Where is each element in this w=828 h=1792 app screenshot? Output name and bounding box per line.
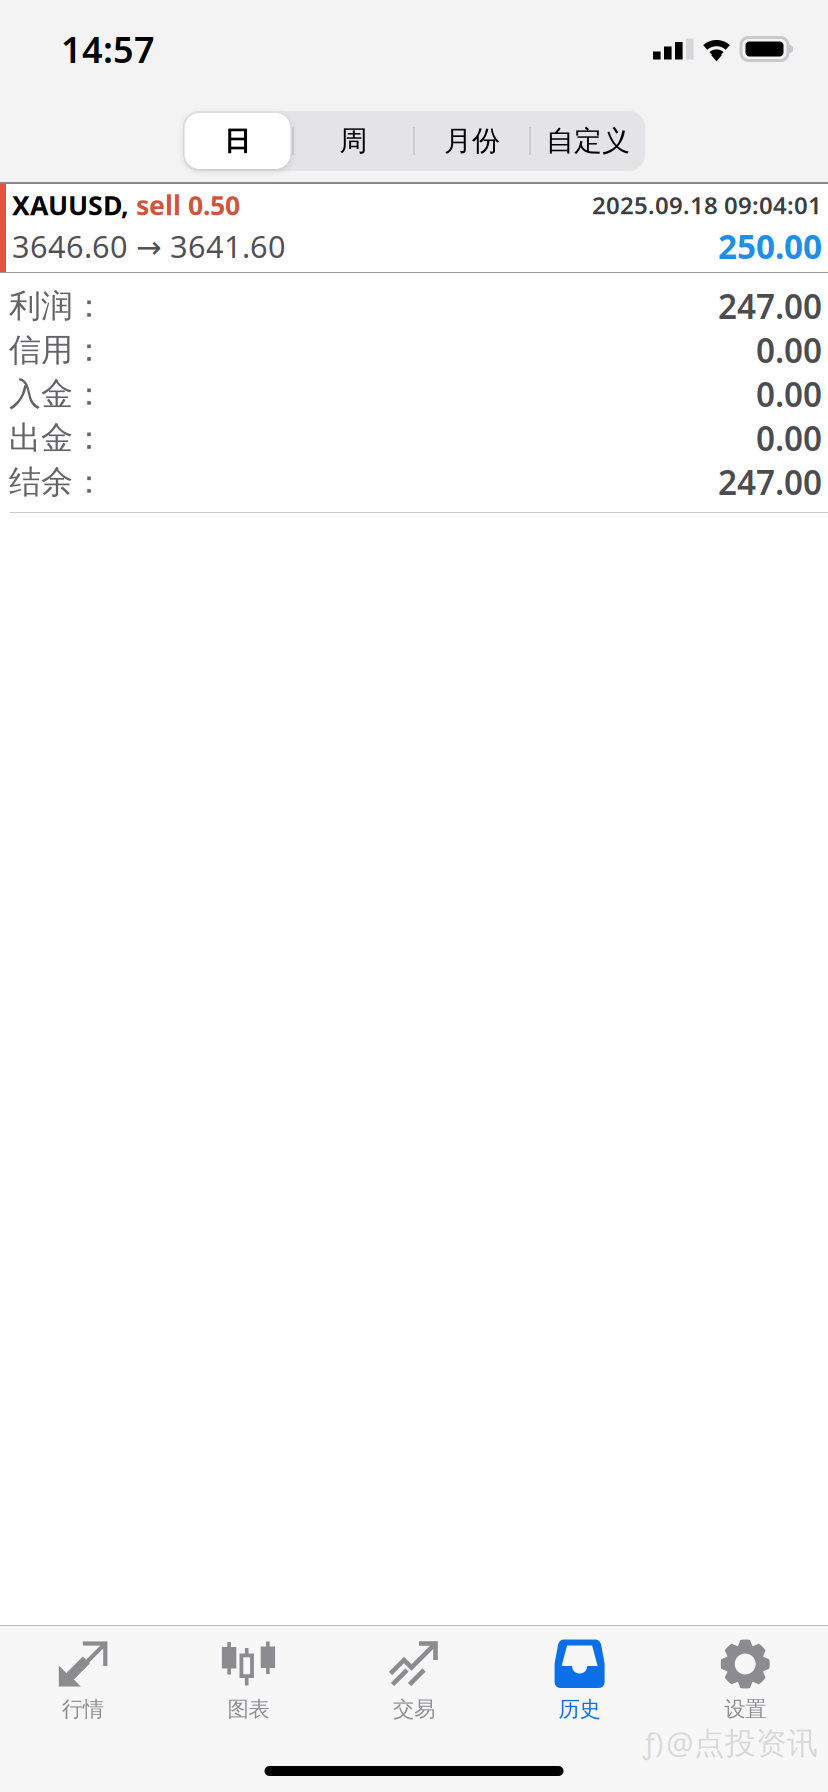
staticText: 250.00 bbox=[718, 224, 822, 268]
staticText: 2025.09.18 09:04:01 bbox=[592, 189, 822, 221]
staticText: 利润： bbox=[9, 286, 105, 326]
button[interactable]: 设置 bbox=[662, 1626, 828, 1730]
staticText: 交易 bbox=[393, 1696, 435, 1722]
staticText: 14:57 bbox=[61, 25, 155, 73]
button[interactable]: 历史 bbox=[497, 1626, 662, 1730]
staticText: 图表 bbox=[227, 1696, 269, 1722]
staticText: 0.00 bbox=[756, 372, 822, 416]
staticText: 信用： bbox=[9, 330, 105, 370]
staticText: 3646.60 → 3641.60 bbox=[12, 226, 286, 266]
button[interactable]: 交易 bbox=[331, 1626, 497, 1730]
staticText: 行情 bbox=[62, 1696, 104, 1722]
staticText: 自定义 bbox=[546, 124, 630, 158]
button[interactable]: 月份 bbox=[414, 111, 529, 171]
staticText: @点投资讯 bbox=[666, 1722, 818, 1763]
staticText: 周 bbox=[339, 124, 367, 158]
staticText: 247.00 bbox=[718, 284, 822, 328]
staticText: 月份 bbox=[444, 124, 500, 158]
staticText: 0.00 bbox=[756, 328, 822, 372]
staticText: 247.00 bbox=[718, 460, 822, 504]
staticText: 出金： bbox=[9, 418, 105, 458]
staticText: 0.00 bbox=[756, 416, 822, 460]
staticText: 结余： bbox=[9, 462, 105, 502]
button[interactable]: 周 bbox=[293, 111, 413, 171]
staticText: 入金： bbox=[9, 374, 105, 414]
staticText: sell 0.50 bbox=[136, 187, 240, 223]
button[interactable]: 日 bbox=[182, 111, 292, 171]
staticText: 日 bbox=[224, 125, 251, 157]
button[interactable]: XAUUSD, bbox=[0, 184, 828, 272]
staticText: 设置 bbox=[724, 1696, 766, 1722]
staticText: XAUUSD, bbox=[12, 187, 136, 223]
staticText: 历史 bbox=[559, 1696, 601, 1722]
staticText: ƒ) bbox=[643, 1724, 663, 1761]
button[interactable]: 行情 bbox=[0, 1626, 166, 1730]
button[interactable]: 自定义 bbox=[530, 111, 645, 171]
button[interactable]: 图表 bbox=[166, 1626, 331, 1730]
